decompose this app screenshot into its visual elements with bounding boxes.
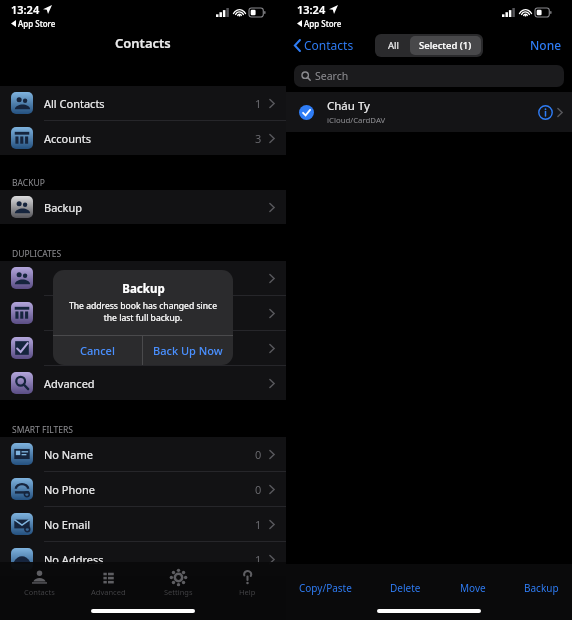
staticText: 0 <box>255 482 262 497</box>
button[interactable]: All Contacts <box>0 86 286 120</box>
staticText: Contacts <box>115 34 171 52</box>
staticText: Search <box>315 69 349 83</box>
staticText: Backup <box>44 200 83 215</box>
staticText: Help <box>239 587 256 597</box>
button[interactable]: Help <box>217 569 277 597</box>
staticText: Cancel <box>80 343 115 358</box>
button[interactable]: Duplicates option <box>0 296 286 330</box>
button[interactable]: None <box>520 33 572 57</box>
staticText: Contacts <box>304 37 354 53</box>
staticText: Back Up Now <box>153 343 223 358</box>
button[interactable]: Selected (1) <box>410 36 481 55</box>
staticText: BACKUP <box>12 177 45 189</box>
button[interactable]: Delete <box>385 578 426 598</box>
button[interactable]: Contact info <box>535 102 555 122</box>
button[interactable]: Duplicates option <box>0 261 286 295</box>
staticText: 0 <box>255 447 262 462</box>
staticText: 3 <box>255 131 262 146</box>
staticText: Settings <box>164 587 193 597</box>
button[interactable]: Backup <box>0 190 286 224</box>
staticText: Cháu Ty <box>327 98 370 114</box>
staticText: Backup <box>122 281 165 297</box>
staticText: No Phone <box>44 482 95 497</box>
staticText: Accounts <box>44 131 92 146</box>
button[interactable]: No Name <box>0 437 286 471</box>
button[interactable]: Advanced <box>0 366 286 400</box>
staticText: DUPLICATES <box>12 248 62 260</box>
staticText: SMART FILTERS <box>12 424 74 436</box>
button[interactable]: Contacts <box>9 569 69 597</box>
button[interactable]: All <box>377 36 410 55</box>
staticText: No Email <box>44 517 91 532</box>
staticText: Delete <box>390 581 421 595</box>
staticText: All <box>388 39 399 52</box>
staticText: 13:24 <box>297 2 326 17</box>
button[interactable]: No Phone <box>0 472 286 506</box>
staticText: The address book has changed since the l… <box>63 300 223 324</box>
button[interactable]: Settings <box>148 569 208 597</box>
staticText: Move <box>460 581 486 595</box>
staticText: 1 <box>255 517 262 532</box>
staticText: iCloud/CardDAV <box>327 115 386 126</box>
staticText: Selected (1) <box>419 39 472 52</box>
button[interactable]: Backup <box>519 578 564 598</box>
staticText: All Contacts <box>44 96 105 111</box>
button[interactable]: Accounts <box>0 121 286 155</box>
button[interactable]: Back Up Now <box>143 336 233 365</box>
button[interactable]: No Address <box>0 542 286 576</box>
staticText: 1 <box>255 96 262 111</box>
staticText: App Store <box>18 18 56 29</box>
staticText: Advanced <box>91 587 126 597</box>
button[interactable]: Search <box>294 65 564 87</box>
button[interactable]: Copy/Paste <box>294 578 357 598</box>
staticText: Advanced <box>44 376 95 391</box>
button[interactable]: Duplicates option <box>0 331 286 365</box>
staticText: 13:24 <box>11 2 40 17</box>
staticText: Backup <box>524 581 559 595</box>
button[interactable]: Contacts <box>286 37 358 53</box>
staticText: No Address <box>44 552 104 567</box>
button[interactable]: Cancel <box>53 336 142 365</box>
other: Selected <box>299 105 314 120</box>
staticText: Contacts <box>24 587 55 597</box>
staticText: 1 <box>255 552 262 567</box>
staticText: App Store <box>304 18 342 29</box>
button[interactable]: Advanced <box>78 569 138 597</box>
button[interactable]: No Email <box>0 507 286 541</box>
staticText: None <box>530 37 562 53</box>
staticText: No Name <box>44 447 93 462</box>
button[interactable]: Selected <box>286 92 572 132</box>
staticText: Copy/Paste <box>299 581 352 595</box>
button[interactable]: Move <box>455 578 491 598</box>
